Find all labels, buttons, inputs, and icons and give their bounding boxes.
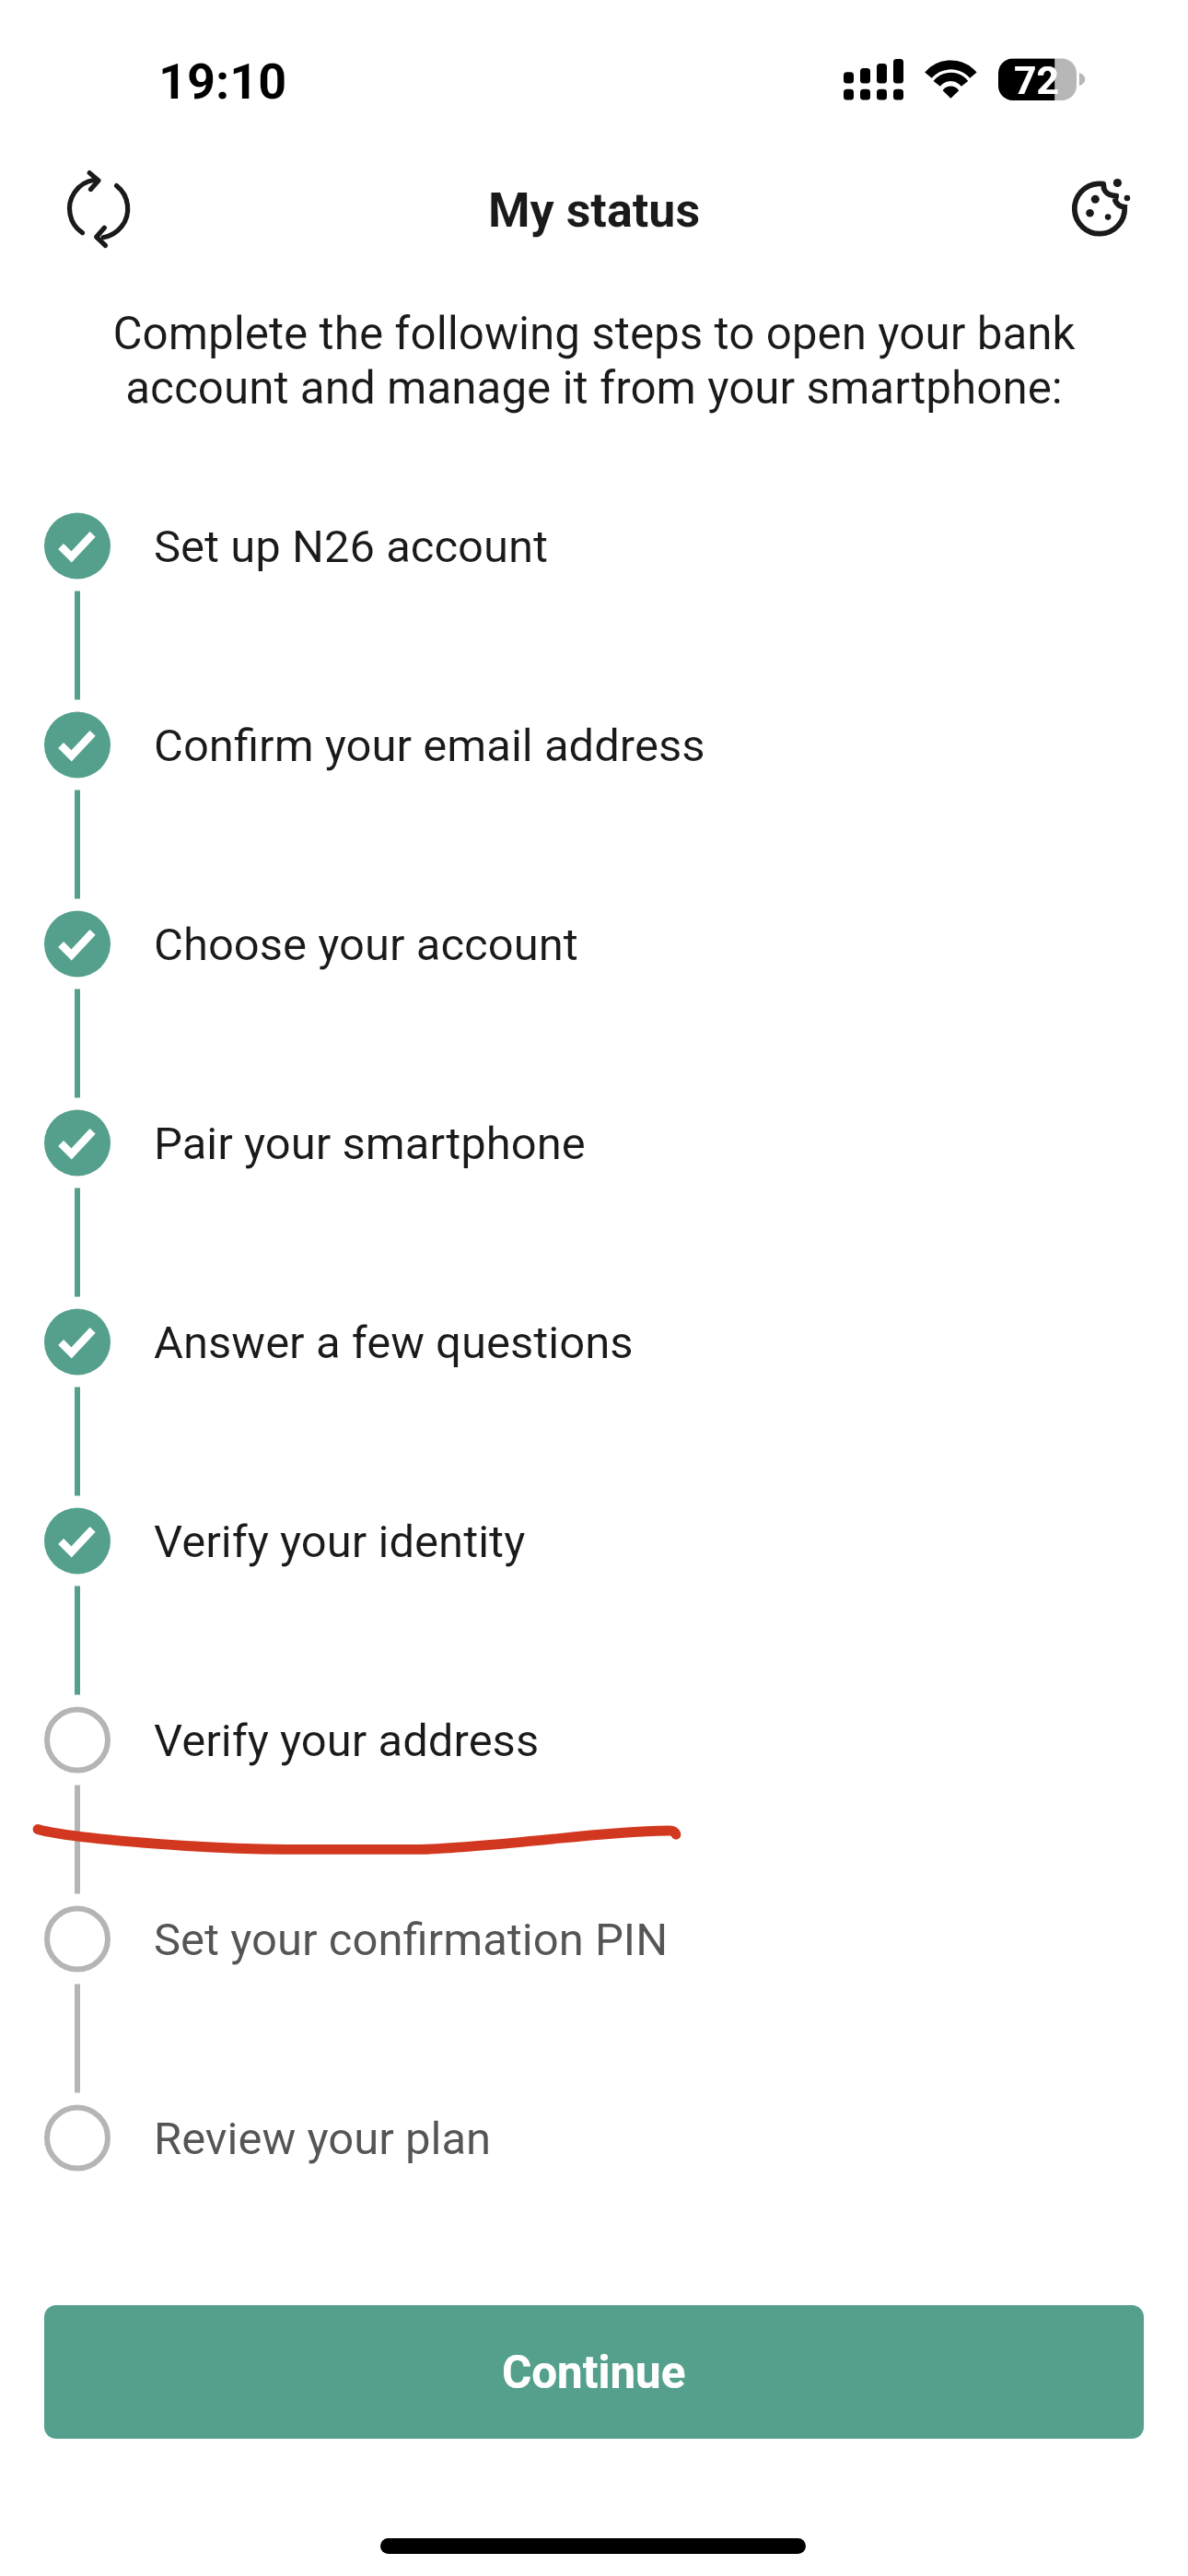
staticText: Continue bbox=[502, 2346, 686, 2399]
staticText: Pair your smartphone bbox=[154, 1118, 586, 1170]
staticText: 19:10 bbox=[158, 53, 287, 111]
button[interactable]: Set your confirmation PIN bbox=[0, 1884, 1188, 1995]
staticText: Verify your identity bbox=[154, 1516, 526, 1568]
button[interactable]: Answer a few questions bbox=[0, 1287, 1188, 1398]
button[interactable]: Confirm your email address bbox=[0, 690, 1188, 801]
button[interactable]: Review your plan bbox=[0, 2083, 1188, 2194]
staticText: Set up N26 account bbox=[154, 521, 549, 573]
button[interactable]: Verify your address bbox=[0, 1685, 1188, 1796]
staticText: Review your plan bbox=[154, 2113, 492, 2165]
staticText: Answer a few questions bbox=[154, 1317, 634, 1369]
staticText: Set your confirmation PIN bbox=[154, 1914, 669, 1966]
staticText: My status bbox=[488, 182, 701, 239]
button[interactable]: Verify your identity bbox=[0, 1486, 1188, 1597]
button[interactable]: Choose your account bbox=[0, 889, 1188, 1000]
staticText: Complete the following steps to open you… bbox=[88, 307, 1100, 416]
staticText: 72 bbox=[1014, 58, 1059, 100]
button[interactable]: Continue bbox=[44, 2305, 1144, 2439]
staticText: Verify your address bbox=[154, 1715, 540, 1767]
button[interactable]: Set up N26 account bbox=[0, 491, 1188, 602]
staticText: Confirm your email address bbox=[154, 720, 705, 772]
staticText: Choose your account bbox=[154, 919, 578, 971]
button[interactable]: Cookie settings bbox=[1051, 162, 1144, 255]
button[interactable]: Pair your smartphone bbox=[0, 1088, 1188, 1199]
button[interactable]: Refresh bbox=[52, 162, 145, 255]
